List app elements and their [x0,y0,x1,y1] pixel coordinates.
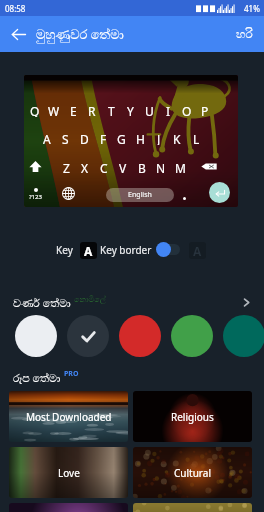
button[interactable] [119,315,161,357]
button[interactable] [171,315,213,357]
staticText: A [193,243,202,259]
staticText: Key [56,243,73,257]
button[interactable]: Love [9,447,128,498]
button[interactable]: ?123 [26,185,44,203]
button[interactable]: A [189,242,206,259]
staticText: English [128,190,152,200]
staticText: PRO [64,369,79,379]
button[interactable]: English [106,188,174,202]
button[interactable]: Cultural [133,447,252,498]
staticText: Y [127,103,134,117]
staticText: Cultural [174,466,211,480]
staticText: රූප තේමා [13,370,61,385]
button[interactable] [15,315,57,357]
staticText: V [119,160,127,174]
staticText: Q [30,103,40,117]
staticText: R [88,103,96,117]
staticText: I [166,103,171,117]
staticText: Love [58,466,80,480]
staticText: T [108,103,115,117]
button[interactable]: Most Downloaded [9,391,128,442]
staticText: G [117,131,126,145]
staticText: A [84,243,93,259]
button[interactable]: Religious [133,391,252,442]
staticText: Key border [100,243,152,257]
button[interactable]: Backspace [201,161,217,172]
staticText: M [175,160,186,174]
staticText: D [80,131,89,145]
staticText: 08:58 [5,3,26,14]
staticText: K [173,131,181,145]
button[interactable]: හරි [225,16,264,52]
button[interactable] [9,503,128,512]
button[interactable]: Period [178,192,190,204]
staticText: නොමිලේ [74,296,106,304]
button[interactable] [67,315,109,357]
staticText: S [62,131,69,145]
staticText: N [156,160,166,174]
button[interactable]: වර්ණ තේමා [0,288,264,316]
staticText: O [182,103,192,117]
button[interactable]: Key border [100,243,152,257]
staticText: H [136,131,145,145]
staticText: Religious [171,410,214,424]
button[interactable]: A [80,242,97,259]
staticText: ?123 [29,193,42,201]
button[interactable]: Shift [29,160,42,173]
button[interactable]: Key [56,243,73,257]
staticText: B [138,160,146,174]
staticText: Z [63,160,70,174]
button[interactable] [223,315,264,357]
button[interactable]: Enter [209,182,230,203]
button[interactable]: Key border toggle [154,240,184,259]
staticText: F [100,131,107,145]
staticText: A [43,131,51,145]
button[interactable]: Back [0,16,36,52]
staticText: 41% [244,3,260,14]
staticText: X [81,160,89,174]
staticText: W [48,103,60,117]
staticText: වර්ණ තේමා [13,295,71,310]
staticText: E [70,103,77,117]
staticText: මුහුණුවර තේමා [36,25,124,43]
button[interactable] [133,503,252,512]
button[interactable]: Change language [62,187,75,200]
staticText: C [100,160,108,174]
staticText: L [193,131,200,145]
staticText: P [201,103,209,117]
staticText: Most Downloaded [26,410,112,424]
staticText: U [145,103,154,117]
staticText: හරි [236,28,253,40]
staticText: J [157,131,161,145]
